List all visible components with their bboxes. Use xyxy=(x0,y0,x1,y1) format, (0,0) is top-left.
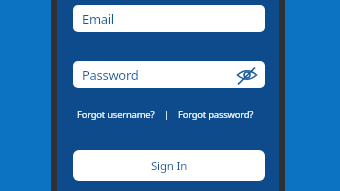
button[interactable]: Email xyxy=(73,5,265,32)
staticText: | xyxy=(164,108,169,121)
button[interactable]: Forgot password? xyxy=(178,108,254,121)
staticText: Forgot password? xyxy=(178,108,254,121)
staticText: Sign In xyxy=(151,158,188,174)
button[interactable]: Password xyxy=(73,61,265,88)
button[interactable]: Sign In xyxy=(73,150,265,181)
button[interactable]: Forgot username? xyxy=(77,108,155,121)
staticText: Password xyxy=(82,66,139,84)
staticText: Forgot username? xyxy=(77,108,155,121)
staticText: Email xyxy=(82,10,114,28)
